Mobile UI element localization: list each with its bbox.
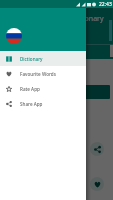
button[interactable]: Share [90, 142, 104, 156]
staticText: Dictionary [20, 56, 43, 62]
button[interactable]: Share App [0, 96, 86, 111]
staticText: Favourite Words [20, 71, 56, 77]
staticText: Share App [20, 101, 43, 107]
button[interactable]: Favourite Words [0, 66, 86, 81]
staticText: 22:43 [99, 1, 112, 8]
button[interactable]: Rate App [0, 81, 86, 96]
button[interactable]: Favourite [90, 177, 104, 191]
staticText: Dictionary [70, 14, 104, 24]
button[interactable]: Dictionary [0, 51, 86, 66]
staticText: Rate App [20, 86, 40, 92]
